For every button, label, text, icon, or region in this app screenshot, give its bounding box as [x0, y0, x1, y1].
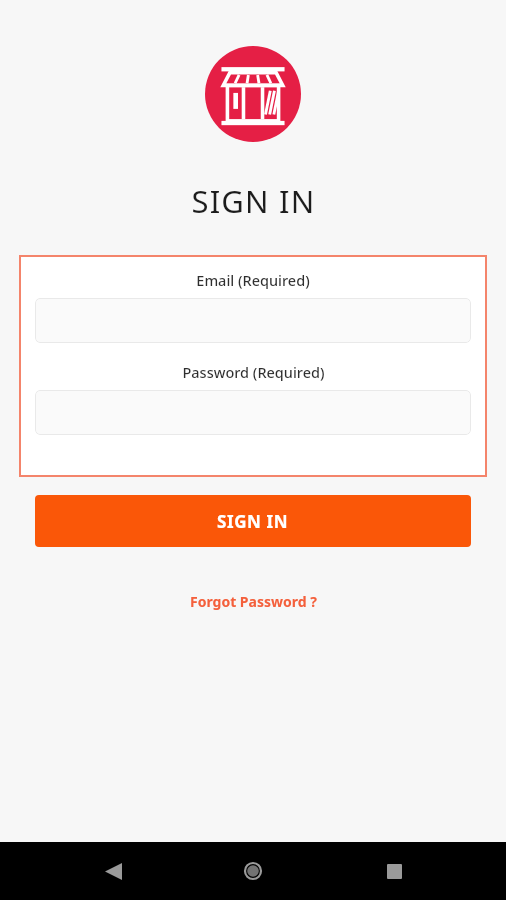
button[interactable]: Forgot Password ? — [180, 587, 327, 616]
staticText: SIGN IN — [191, 180, 316, 222]
button[interactable]: Text input — [35, 298, 471, 343]
staticText: Password (Required) — [182, 362, 325, 382]
button[interactable]: Back — [85, 843, 141, 899]
button[interactable]: SIGN IN — [35, 495, 471, 547]
staticText: Forgot Password ? — [190, 592, 317, 611]
staticText: Email (Required) — [196, 270, 310, 290]
button[interactable]: Text input — [35, 390, 471, 435]
button[interactable]: Home — [225, 843, 281, 899]
staticText: SIGN IN — [217, 510, 289, 533]
button[interactable]: Recent apps — [366, 843, 422, 899]
